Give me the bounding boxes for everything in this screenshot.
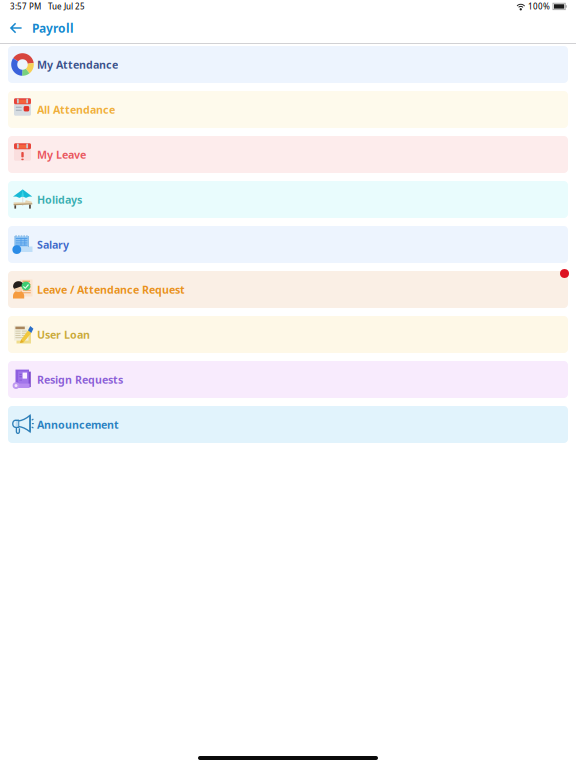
- staticText: Payroll: [32, 20, 74, 36]
- staticText: 3:57 PM: [10, 1, 41, 12]
- button[interactable]: User Loan: [8, 316, 568, 353]
- button[interactable]: Leave / Attendance Request: [8, 271, 568, 308]
- staticText: Leave / Attendance Request: [37, 282, 185, 297]
- button[interactable]: Announcement: [8, 406, 568, 443]
- button[interactable]: Holidays: [8, 181, 568, 218]
- staticText: Tue Jul 25: [48, 1, 85, 12]
- staticText: My Leave: [37, 147, 86, 162]
- staticText: My Attendance: [37, 57, 118, 72]
- button[interactable]: All Attendance: [8, 91, 568, 128]
- staticText: All Attendance: [37, 102, 115, 117]
- button[interactable]: Resign Requests: [8, 361, 568, 398]
- staticText: Salary: [37, 237, 69, 252]
- button[interactable]: My Leave: [8, 136, 568, 173]
- staticText: 100%: [528, 1, 550, 12]
- staticText: User Loan: [37, 327, 90, 342]
- staticText: Announcement: [37, 417, 119, 432]
- button[interactable]: Payroll: [32, 19, 74, 37]
- staticText: Holidays: [37, 192, 82, 207]
- staticText: Resign Requests: [37, 372, 123, 387]
- button[interactable]: Back: [0, 19, 32, 37]
- button[interactable]: Salary: [8, 226, 568, 263]
- button[interactable]: My Attendance: [8, 46, 568, 83]
